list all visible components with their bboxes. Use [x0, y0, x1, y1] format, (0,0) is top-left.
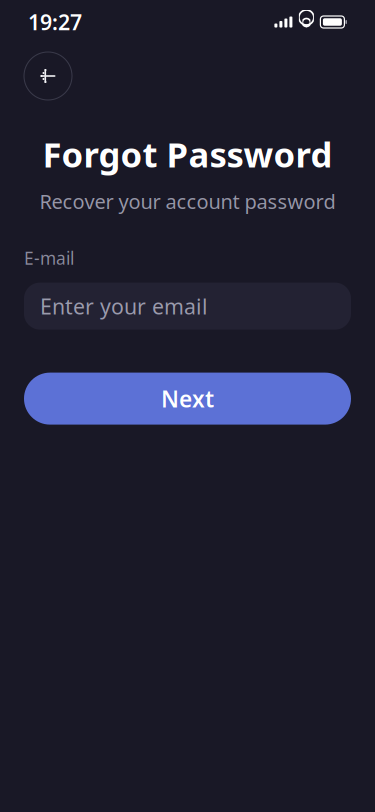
button[interactable]: Back [24, 52, 72, 100]
staticText: Enter your email [40, 292, 208, 320]
button[interactable]: Enter your email [24, 283, 351, 330]
staticText: Forgot Password [42, 131, 332, 177]
staticText: Recover your account password [39, 188, 335, 215]
button[interactable]: Next [24, 373, 351, 425]
staticText: E-mail [24, 247, 74, 270]
staticText: 19:27 [28, 8, 82, 36]
staticText: Next [161, 384, 214, 414]
